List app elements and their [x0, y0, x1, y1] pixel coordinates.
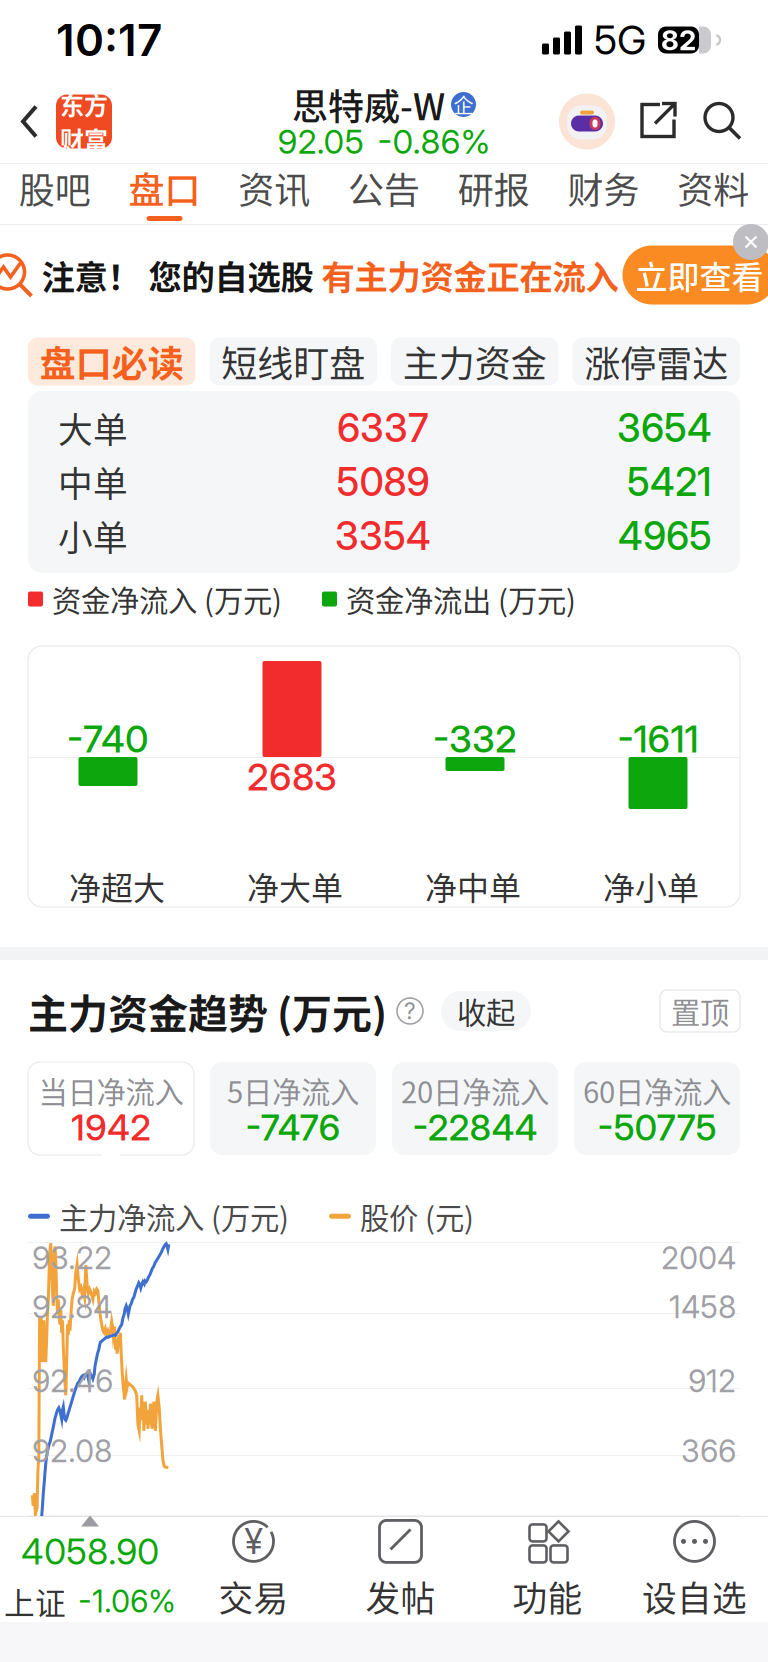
- button[interactable]: 60日净流入: [574, 1062, 740, 1155]
- button[interactable]: 短线盯盘: [209, 337, 377, 385]
- staticText: 中单: [58, 457, 128, 507]
- staticText: 1942: [71, 1106, 151, 1149]
- button[interactable]: 置顶: [660, 990, 740, 1032]
- staticText: 有主力资金正在流入: [313, 251, 618, 299]
- button[interactable]: 上证指数: [0, 1517, 180, 1622]
- staticText: 主力资金: [403, 335, 547, 387]
- button[interactable]: 资讯: [219, 164, 329, 224]
- staticText: -50775: [597, 1106, 716, 1149]
- staticText: ?: [404, 997, 416, 1025]
- staticText: 盘口必读: [40, 335, 184, 387]
- staticText: 资金净流入 (万元): [52, 578, 282, 620]
- staticText: 912: [688, 1362, 736, 1399]
- staticText: 4058.90: [21, 1529, 159, 1573]
- staticText: ¥: [244, 1520, 262, 1562]
- button[interactable]: 资料: [658, 164, 768, 224]
- button[interactable]: 5日净流入: [210, 1062, 376, 1155]
- staticText: 资料: [677, 162, 749, 214]
- button[interactable]: 研报: [439, 164, 549, 224]
- button[interactable]: 财务: [549, 164, 658, 224]
- staticText: 股吧: [19, 162, 91, 214]
- button[interactable]: 当日净流入: [28, 1062, 194, 1155]
- button[interactable]: 股吧: [0, 164, 110, 224]
- staticText: 1458: [669, 1288, 736, 1325]
- staticText: 92.05: [277, 121, 363, 162]
- staticText: 盘口: [129, 162, 201, 214]
- staticText: 主力资金趋势 (万元): [28, 982, 387, 1040]
- button[interactable]: 公告: [329, 164, 439, 224]
- button[interactable]: 涨停雷达: [572, 337, 740, 385]
- button[interactable]: 注意！: [0, 225, 768, 325]
- staticText: 发帖: [365, 1571, 435, 1622]
- staticText: 上证: [4, 1579, 66, 1623]
- staticText: -1611: [617, 716, 698, 762]
- button[interactable]: 盘口: [110, 164, 219, 224]
- button[interactable]: 搜索: [702, 100, 744, 142]
- staticText: 功能: [512, 1571, 582, 1622]
- staticText: 93.22: [32, 1239, 112, 1276]
- staticText: 财富: [60, 121, 108, 156]
- staticText: 大单: [58, 403, 128, 453]
- button[interactable]: 收起: [441, 991, 531, 1031]
- staticText: 3654: [617, 405, 712, 451]
- staticText: -22844: [412, 1106, 537, 1149]
- staticText: 5089: [336, 459, 429, 505]
- button[interactable]: 主力资金: [391, 337, 558, 385]
- staticText: 设自选: [642, 1571, 747, 1622]
- button[interactable]: 功能: [474, 1517, 621, 1622]
- staticText: 净小单: [603, 863, 699, 909]
- staticText: 10:17: [56, 13, 162, 67]
- staticText: 366: [681, 1432, 736, 1469]
- staticText: 短线盯盘: [221, 335, 365, 387]
- staticText: 6337: [337, 405, 429, 451]
- staticText: -740: [67, 716, 149, 762]
- staticText: 净大单: [247, 863, 343, 909]
- staticText: 立即查看: [635, 252, 763, 298]
- staticText: 5日净流入: [227, 1069, 359, 1112]
- staticText: 净中单: [425, 863, 521, 909]
- staticText: 2683: [247, 754, 337, 800]
- staticText: 注意！: [41, 251, 140, 299]
- staticText: 主力净流入 (万元): [59, 1195, 289, 1237]
- staticText: 当日净流入: [38, 1069, 183, 1112]
- button[interactable]: 返回: [0, 80, 112, 163]
- staticText: 2004: [661, 1239, 736, 1276]
- staticText: 研报: [458, 162, 530, 214]
- staticText: 5G: [594, 16, 646, 64]
- staticText: 资金净流出 (万元): [346, 578, 576, 620]
- button[interactable]: 分享: [638, 100, 680, 142]
- button[interactable]: 盘口必读: [28, 337, 195, 385]
- staticText: -7476: [245, 1106, 340, 1149]
- staticText: 3354: [335, 513, 431, 559]
- staticText: 收起: [457, 990, 515, 1032]
- staticText: -332: [433, 716, 517, 762]
- staticText: 净超大: [69, 863, 165, 909]
- staticText: 资讯: [238, 162, 310, 214]
- staticText: 92.08: [32, 1432, 112, 1469]
- staticText: 5421: [627, 459, 712, 505]
- button[interactable]: 说明: [395, 996, 425, 1026]
- staticText: 您的自选股: [140, 251, 313, 299]
- staticText: 置顶: [671, 990, 729, 1032]
- staticText: 60日净流入: [583, 1069, 731, 1112]
- staticText: -0.86%: [377, 121, 490, 162]
- button[interactable]: 智能助手: [558, 92, 616, 150]
- staticText: 4965: [618, 513, 712, 559]
- staticText: 92.46: [32, 1362, 113, 1399]
- staticText: 财务: [567, 162, 639, 214]
- button[interactable]: 关闭: [732, 223, 768, 261]
- staticText: -1.06%: [78, 1583, 176, 1620]
- button[interactable]: 发帖: [327, 1517, 474, 1622]
- staticText: 东方: [60, 87, 108, 121]
- staticText: 92.84: [32, 1288, 112, 1325]
- staticText: 公告: [348, 162, 420, 214]
- button[interactable]: 设自选: [621, 1517, 768, 1622]
- button[interactable]: 20日净流入: [392, 1062, 558, 1155]
- staticText: 思特威-W: [292, 78, 445, 130]
- staticText: 20日净流入: [401, 1069, 549, 1112]
- staticText: 企: [453, 90, 473, 119]
- button[interactable]: ¥: [180, 1517, 327, 1622]
- staticText: 82: [661, 23, 696, 57]
- staticText: 股价 (元): [360, 1195, 474, 1237]
- staticText: 交易: [218, 1571, 288, 1622]
